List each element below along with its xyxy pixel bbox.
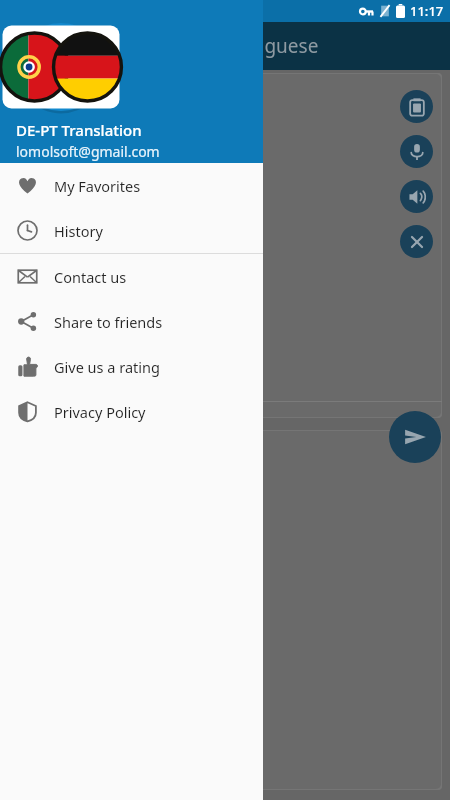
- staticText: Privacy Policy: [54, 402, 146, 422]
- staticText: 11:17: [410, 2, 444, 20]
- staticText: History: [54, 221, 103, 241]
- button[interactable]: Contact us: [0, 254, 263, 299]
- staticText: My Favorites: [54, 176, 141, 196]
- staticText: Share to friends: [54, 312, 163, 332]
- staticText: Portuguese: [215, 33, 319, 59]
- button[interactable]: My Favorites: [0, 163, 263, 208]
- staticText: Enter text to translate: [22, 87, 196, 110]
- button[interactable]: History: [0, 208, 263, 253]
- staticText: lomolsoft@gmail.com: [16, 142, 160, 161]
- button[interactable]: Voice input: [400, 135, 433, 168]
- staticText: Give us a rating: [54, 357, 160, 377]
- button[interactable]: Share to friends: [0, 299, 263, 344]
- staticText: Contact us: [54, 267, 127, 287]
- button[interactable]: Privacy Policy: [0, 389, 263, 434]
- button[interactable]: Translate: [389, 411, 441, 463]
- button[interactable]: Speak text: [400, 180, 433, 213]
- staticText: DE-PT Translation: [16, 120, 142, 140]
- button[interactable]: Clear text: [400, 225, 433, 258]
- button[interactable]: Give us a rating: [0, 344, 263, 389]
- button[interactable]: Paste from clipboard: [400, 90, 433, 123]
- button[interactable]: Swap languages: [4, 24, 48, 68]
